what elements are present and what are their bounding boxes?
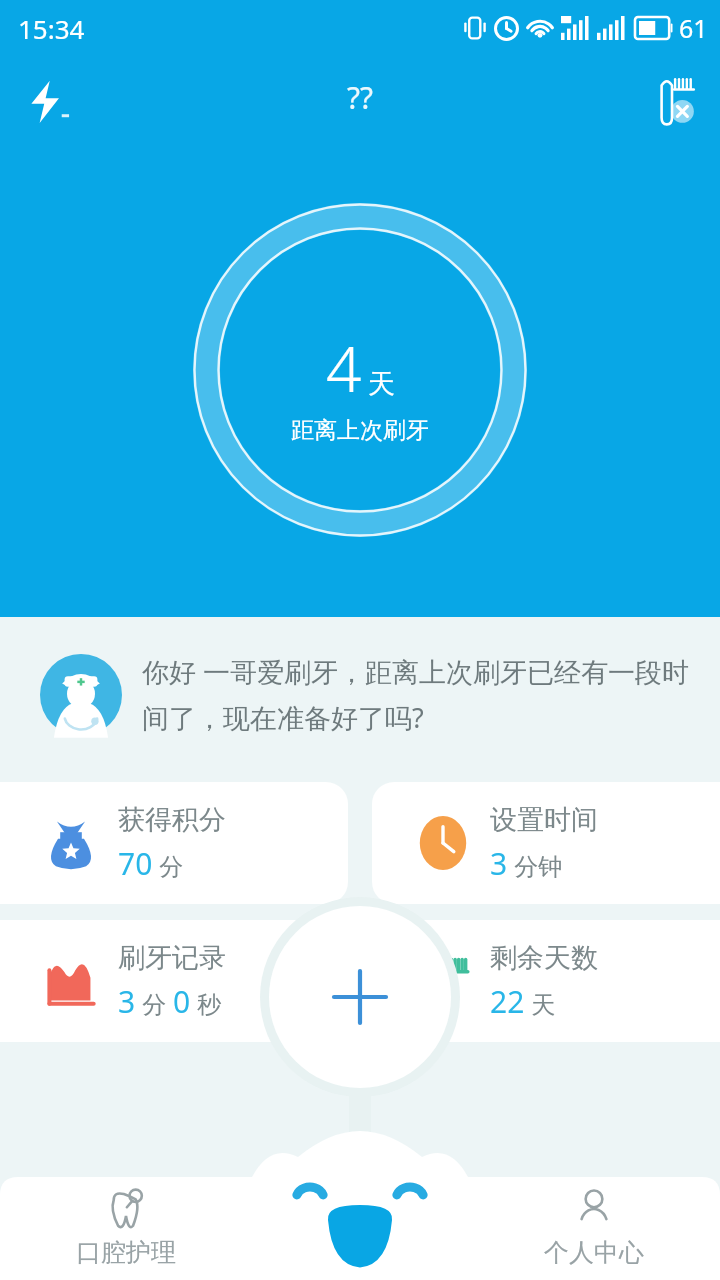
staticText: 刷牙记录 (118, 941, 226, 975)
staticText: 15:34 (18, 11, 85, 46)
staticText: 3 (490, 843, 508, 884)
staticText: 0 (173, 981, 191, 1022)
staticText: 获得积分 (118, 803, 226, 837)
button[interactable]: Toothbrush disconnected (636, 65, 708, 137)
staticText: 70 (118, 843, 153, 884)
button[interactable]: Start brushing (260, 897, 460, 1097)
staticText: 剩余天数 (490, 941, 598, 975)
staticText: 分 (136, 987, 173, 1020)
button[interactable]: 获得积分 (0, 782, 348, 904)
staticText: 22 (490, 981, 525, 1022)
button[interactable]: 口腔护理 (56, 1187, 196, 1268)
button[interactable]: Battery status (14, 68, 80, 134)
staticText: 口腔护理 (76, 1237, 176, 1268)
staticText: 天 (525, 987, 556, 1020)
button[interactable]: 个人中心 (524, 1187, 664, 1268)
staticText: 天 (368, 367, 395, 401)
staticText: ?? (347, 77, 374, 118)
staticText: 秒 (191, 987, 222, 1020)
staticText: 4 (326, 326, 362, 410)
button[interactable]: 剩余天数 (372, 920, 720, 1042)
staticText: 距离上次刷牙 (291, 416, 429, 445)
staticText: 设置时间 (490, 803, 598, 837)
button[interactable]: 刷牙记录 (0, 920, 348, 1042)
staticText: 3 (118, 981, 136, 1022)
staticText: 61 (679, 11, 708, 45)
button[interactable]: 设置时间 (372, 782, 720, 904)
staticText: 你好 一哥爱刷牙，距离上次刷牙已经有一段时间了，现在准备好了吗? (142, 653, 690, 736)
staticText: 分 (153, 849, 184, 882)
staticText: 分钟 (508, 849, 563, 882)
staticText: 个人中心 (544, 1237, 644, 1268)
